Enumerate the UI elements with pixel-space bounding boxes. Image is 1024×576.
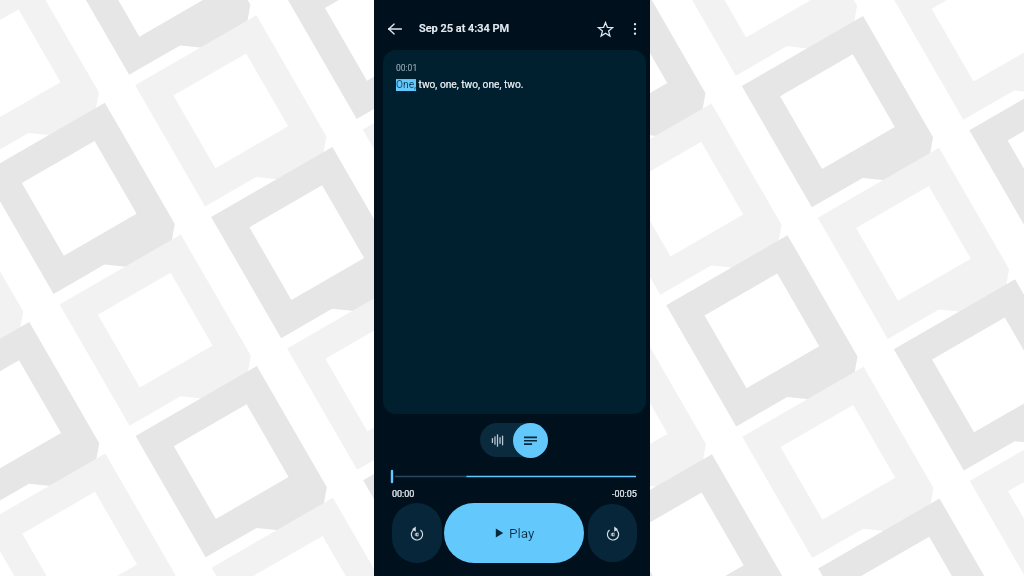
staticText: -00:05 (612, 489, 637, 500)
button[interactable]: Favorite (589, 13, 621, 45)
button[interactable]: Replay 10 seconds (392, 503, 442, 563)
staticText: Sep 25 at 4:34 PM (419, 22, 510, 35)
staticText: 00:00 (392, 489, 415, 500)
staticText: Play (509, 525, 535, 541)
staticText: 00:01 (396, 63, 418, 73)
button[interactable]: Transcript view (513, 423, 548, 458)
button[interactable]: Play (444, 503, 584, 563)
button[interactable]: 00:01 (383, 50, 646, 414)
button[interactable]: Waveform view (480, 423, 514, 457)
button[interactable]: More options (619, 13, 651, 45)
button[interactable]: Forward 10 seconds (588, 504, 637, 562)
button[interactable]: Back (379, 13, 411, 45)
staticText: One, two, one, two, one, two. (396, 79, 524, 91)
